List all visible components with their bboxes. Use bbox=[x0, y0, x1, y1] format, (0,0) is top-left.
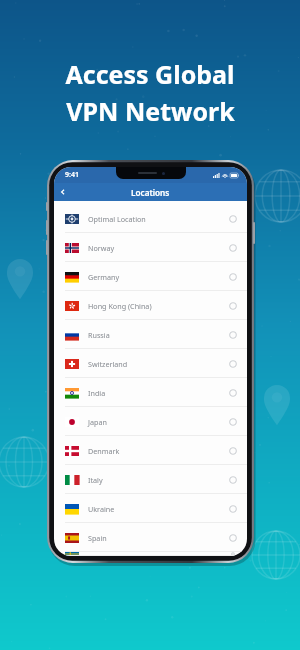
button[interactable]: Italy bbox=[54, 465, 247, 494]
button[interactable]: Japan bbox=[54, 407, 247, 436]
staticText: Switzerland bbox=[88, 359, 128, 369]
staticText: Hong Kong (China) bbox=[88, 301, 152, 311]
staticText: Denmark bbox=[88, 446, 120, 456]
staticText: Optimal Location bbox=[88, 214, 146, 224]
button[interactable]: India bbox=[54, 378, 247, 407]
staticText: India bbox=[88, 388, 106, 398]
button[interactable]: Germany bbox=[54, 262, 247, 291]
button[interactable]: Hong Kong (China) bbox=[54, 291, 247, 320]
button[interactable]: Russia bbox=[54, 320, 247, 349]
staticText: Norway bbox=[88, 243, 115, 253]
staticText: 9:41 bbox=[65, 170, 79, 180]
staticText: Spain bbox=[88, 533, 107, 543]
button[interactable]: Denmark bbox=[54, 436, 247, 465]
staticText: Italy bbox=[88, 475, 103, 485]
staticText: Access Global bbox=[65, 57, 235, 91]
button[interactable]: Back bbox=[54, 183, 72, 201]
staticText: Japan bbox=[88, 417, 107, 427]
button[interactable]: Sweden bbox=[54, 552, 247, 556]
staticText: Russia bbox=[88, 330, 110, 340]
staticText: VPN Network bbox=[66, 94, 235, 128]
staticText: Locations bbox=[131, 187, 170, 198]
button[interactable]: Switzerland bbox=[54, 349, 247, 378]
staticText: Sweden bbox=[88, 552, 115, 556]
button[interactable]: Optimal Location bbox=[54, 204, 247, 233]
button[interactable]: Ukraine bbox=[54, 494, 247, 523]
staticText: Germany bbox=[88, 272, 120, 282]
button[interactable]: Norway bbox=[54, 233, 247, 262]
staticText: Ukraine bbox=[88, 504, 115, 514]
button[interactable]: Spain bbox=[54, 523, 247, 552]
